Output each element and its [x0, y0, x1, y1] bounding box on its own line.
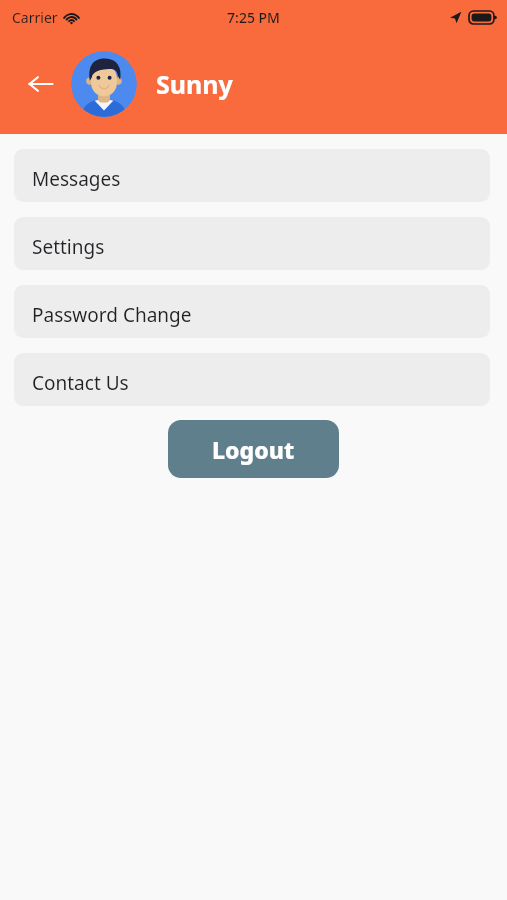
- button[interactable]: Contact Us: [14, 353, 490, 406]
- staticText: Settings: [32, 234, 105, 260]
- button[interactable]: Logout: [168, 420, 339, 478]
- button[interactable]: Settings: [14, 217, 490, 270]
- button[interactable]: Back: [20, 63, 62, 105]
- staticText: Contact Us: [32, 370, 129, 396]
- button[interactable]: Password Change: [14, 285, 490, 338]
- staticText: Logout: [212, 434, 295, 465]
- button[interactable]: Messages: [14, 149, 490, 202]
- staticText: Messages: [32, 166, 121, 192]
- staticText: 7:25 PM: [227, 8, 280, 27]
- staticText: Sunny: [156, 67, 233, 101]
- staticText: Password Change: [32, 302, 192, 328]
- staticText: Carrier: [12, 8, 58, 27]
- button[interactable]: Profile picture: [71, 51, 137, 117]
